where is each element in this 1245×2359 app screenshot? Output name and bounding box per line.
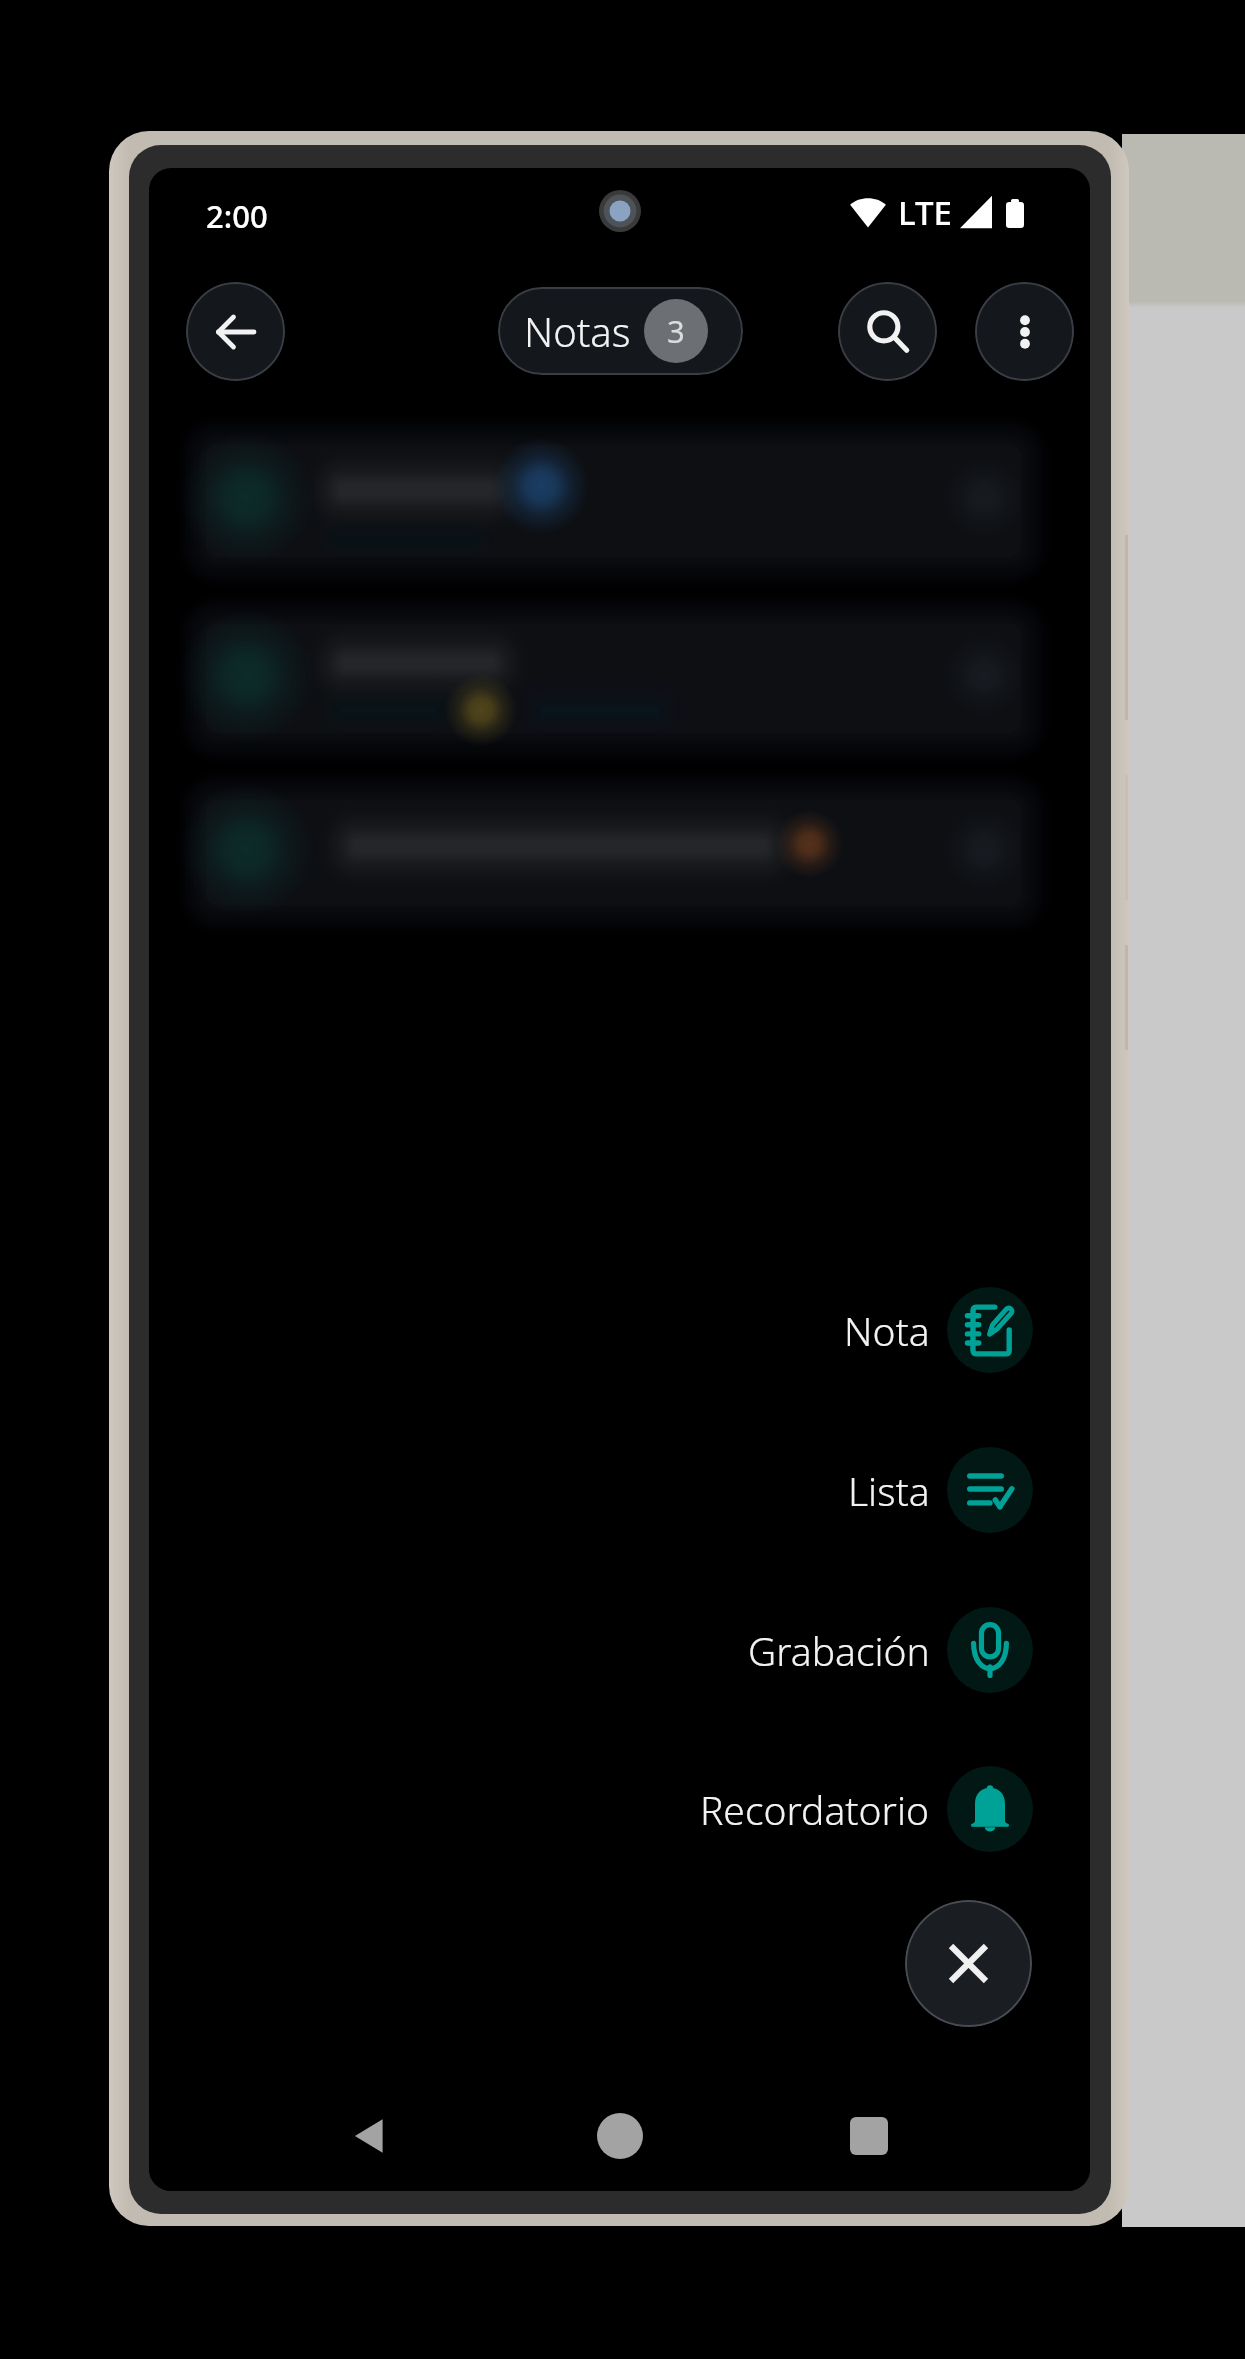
staticText: LTE xyxy=(898,190,952,235)
button[interactable]: Grabación xyxy=(149,1607,1033,1693)
button[interactable]: Recent apps xyxy=(829,2096,909,2176)
button[interactable]: Back xyxy=(330,2096,410,2176)
staticText: Recordatorio xyxy=(700,1783,930,1836)
button[interactable]: Search xyxy=(838,282,937,381)
staticText: 2:00 xyxy=(206,195,268,237)
button[interactable]: Recordatorio xyxy=(149,1766,1033,1852)
staticText: 3 xyxy=(667,310,685,352)
button[interactable]: Nota xyxy=(149,1287,1033,1373)
button[interactable]: More options xyxy=(975,282,1074,381)
staticText: Notas xyxy=(524,304,631,358)
button[interactable]: Close menu xyxy=(905,1900,1032,2027)
button[interactable]: Home xyxy=(580,2096,660,2176)
button[interactable] xyxy=(156,574,1071,783)
button[interactable]: Back xyxy=(186,282,285,381)
button[interactable]: Lista xyxy=(149,1447,1033,1533)
staticText: Grabación xyxy=(748,1624,930,1677)
button[interactable] xyxy=(156,395,1071,607)
button[interactable] xyxy=(156,750,1071,955)
staticText: Lista xyxy=(848,1464,930,1517)
button[interactable]: Notas xyxy=(498,287,743,375)
staticText: Nota xyxy=(844,1304,930,1357)
